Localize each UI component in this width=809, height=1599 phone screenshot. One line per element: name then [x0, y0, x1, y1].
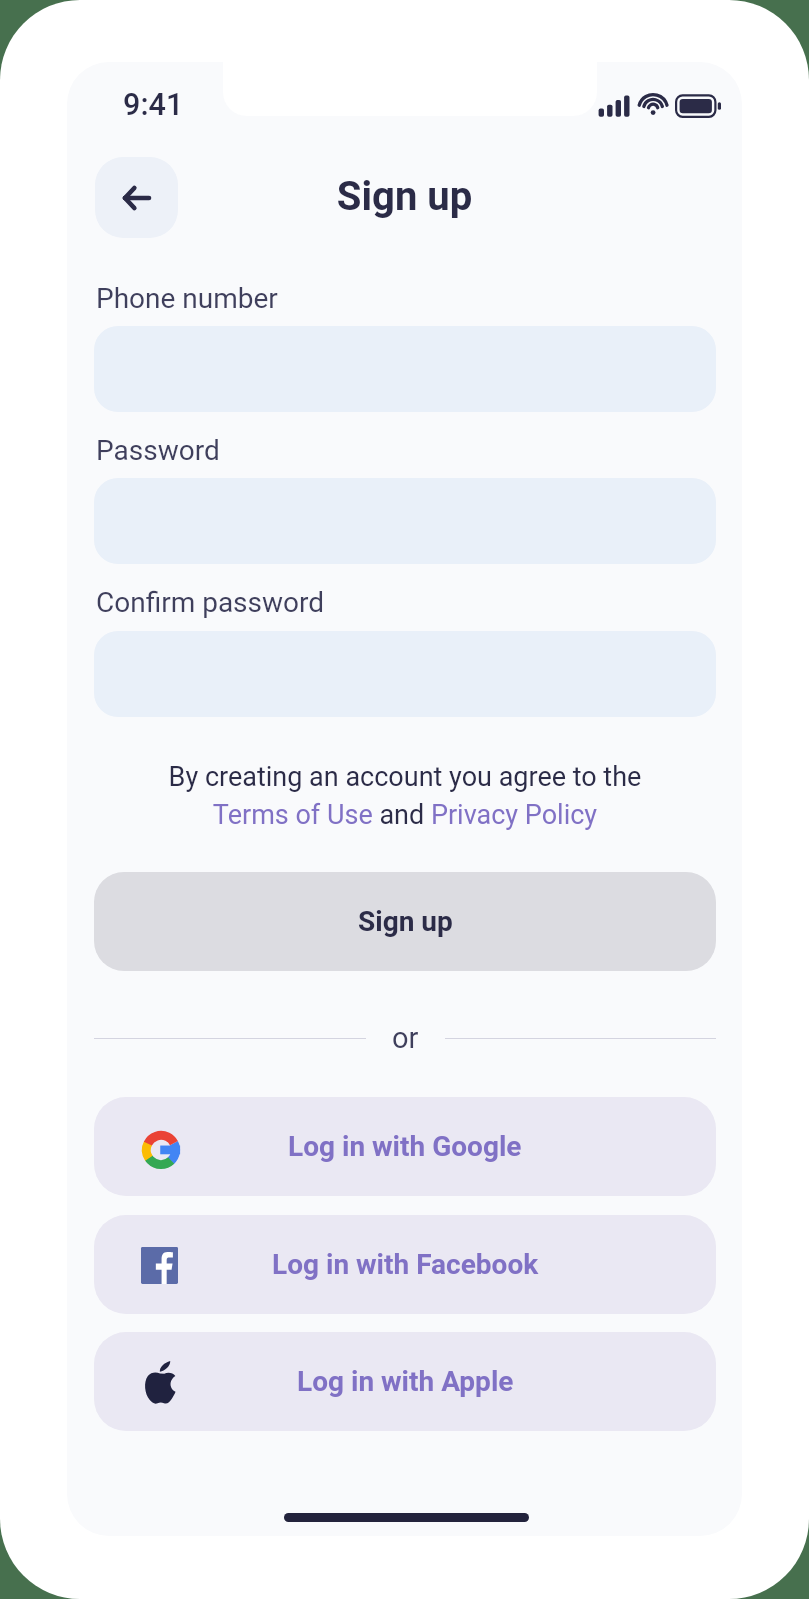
button[interactable]: Log in with Google	[94, 1097, 716, 1196]
staticText: Log in with Facebook	[272, 1248, 539, 1281]
staticText: 9:41	[123, 87, 184, 123]
staticText: or	[392, 1021, 419, 1055]
button[interactable]: Log in with Apple	[94, 1332, 716, 1431]
staticText: Phone number	[96, 282, 278, 315]
button[interactable]: Log in with Facebook	[94, 1215, 716, 1314]
staticText: Log in with Apple	[297, 1365, 514, 1398]
button[interactable]: Sign up	[94, 872, 716, 971]
button[interactable]: Back	[95, 157, 178, 238]
staticText: Sign up	[67, 173, 742, 220]
staticText: Sign up	[358, 905, 453, 938]
staticText: Confirm password	[96, 586, 325, 619]
staticText: By creating an account you agree to the …	[94, 761, 716, 831]
staticText: Log in with Google	[288, 1130, 522, 1163]
staticText: Password	[96, 434, 220, 467]
